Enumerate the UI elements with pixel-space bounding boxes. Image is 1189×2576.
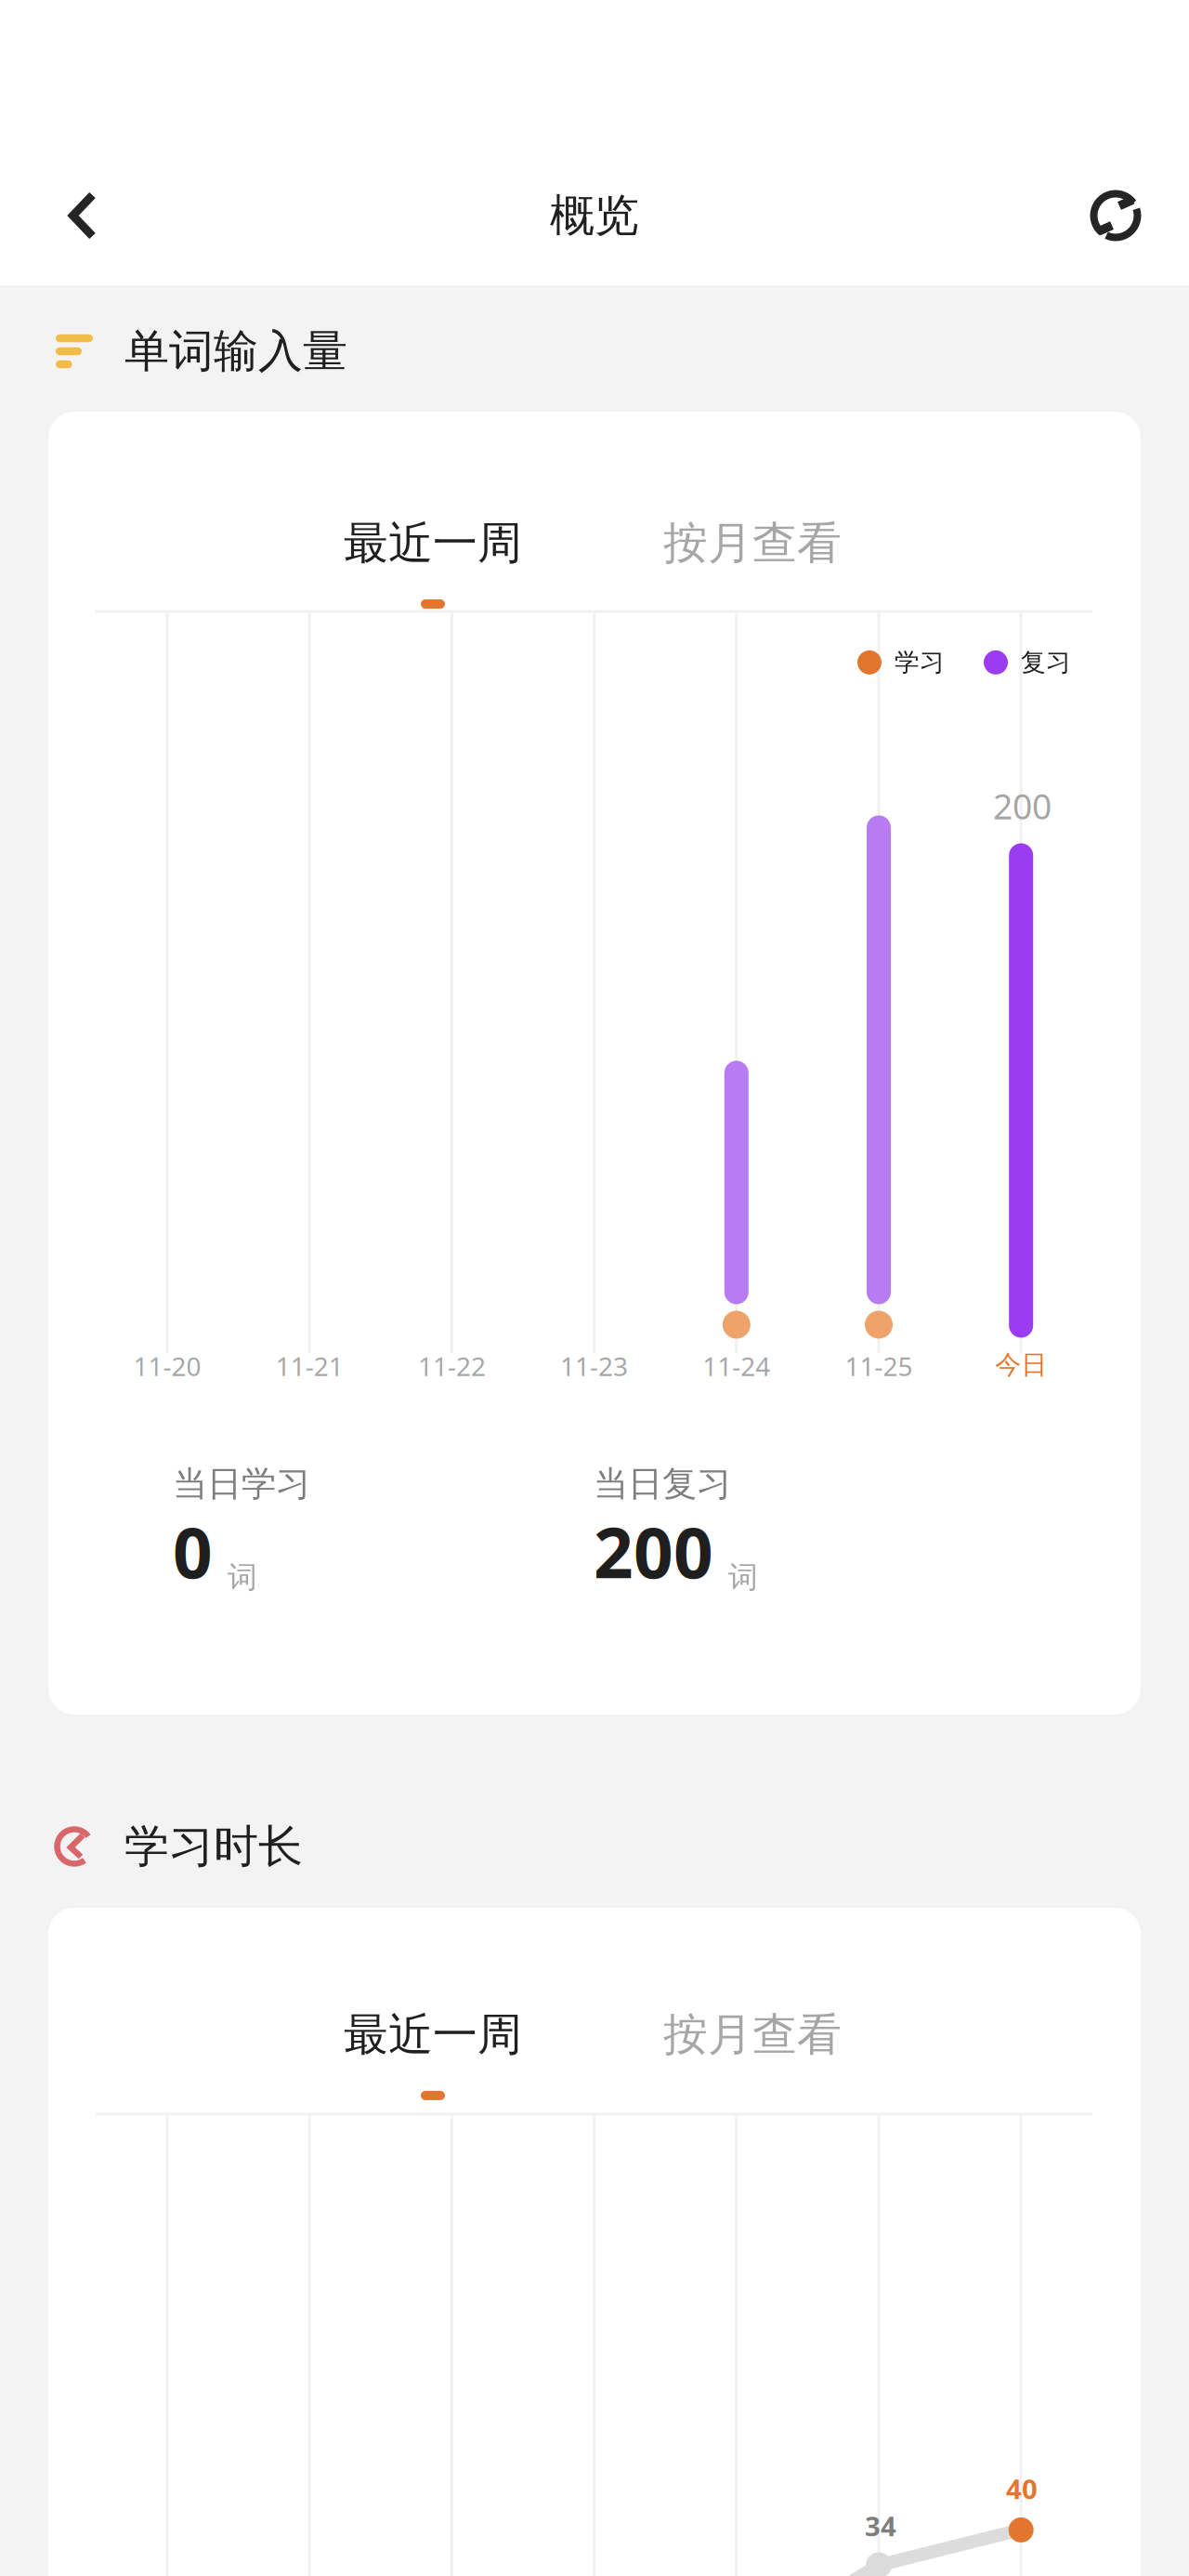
staticText: 当日学习: [173, 1463, 310, 1505]
button[interactable]: 按月查看: [663, 2007, 842, 2100]
button[interactable]: 最近一周: [344, 516, 522, 609]
staticText: 11-25: [845, 1349, 913, 1383]
staticText: 复习: [1021, 647, 1071, 678]
staticText: 当日复习: [594, 1463, 731, 1505]
staticText: 34: [865, 2508, 896, 2544]
staticText: 按月查看: [663, 2007, 842, 2062]
staticText: 概览: [550, 188, 639, 243]
staticText: 200: [993, 783, 1052, 829]
button[interactable]: 最近一周: [344, 2007, 522, 2100]
staticText: 学习: [895, 647, 945, 678]
staticText: 11-22: [418, 1349, 486, 1383]
button[interactable]: Back: [37, 183, 130, 248]
staticText: 40: [1006, 2470, 1038, 2507]
staticText: 0: [173, 1505, 213, 1597]
staticText: 200: [594, 1505, 713, 1597]
staticText: 学习时长: [124, 1819, 303, 1874]
staticText: 最近一周: [344, 516, 522, 571]
staticText: 11-20: [133, 1349, 201, 1383]
staticText: 词: [728, 1559, 758, 1596]
staticText: 今日: [995, 1349, 1047, 1381]
button[interactable]: Refresh: [1078, 183, 1153, 248]
staticText: 按月查看: [663, 516, 842, 571]
staticText: 11-23: [560, 1349, 628, 1383]
staticText: 最近一周: [344, 2007, 522, 2062]
button[interactable]: 按月查看: [663, 516, 842, 609]
staticText: 词: [228, 1559, 257, 1596]
staticText: 11-21: [276, 1349, 343, 1383]
staticText: 单词输入量: [124, 324, 347, 379]
staticText: 11-24: [703, 1349, 770, 1383]
